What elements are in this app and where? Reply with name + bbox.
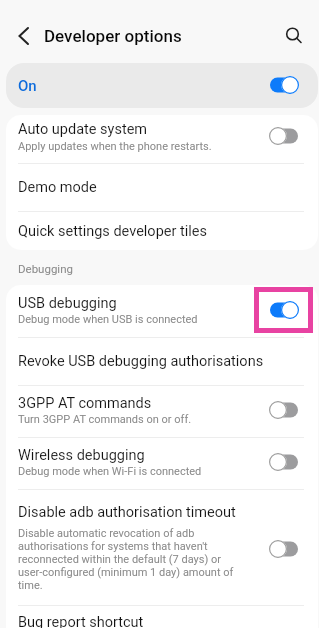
staticText: USB debugging bbox=[18, 295, 117, 312]
staticText: Revoke USB debugging authorisations bbox=[18, 353, 264, 370]
staticText: Turn 3GPP AT commands on or off. bbox=[18, 413, 192, 426]
button[interactable] bbox=[6, 605, 318, 628]
staticText: Bug report shortcut bbox=[18, 614, 144, 628]
button[interactable] bbox=[279, 21, 309, 51]
button[interactable] bbox=[6, 385, 318, 437]
staticText: Apply updates when the phone restarts. bbox=[18, 140, 212, 153]
button[interactable] bbox=[8, 22, 40, 50]
button[interactable] bbox=[6, 337, 318, 385]
button[interactable] bbox=[6, 115, 318, 163]
button[interactable] bbox=[6, 489, 318, 605]
button[interactable] bbox=[6, 163, 318, 211]
staticText: Quick settings developer tiles bbox=[18, 223, 207, 240]
staticText: 3GPP AT commands bbox=[18, 395, 152, 412]
staticText: Debug mode when Wi-Fi is connected bbox=[18, 465, 202, 478]
staticText: Wireless debugging bbox=[18, 447, 145, 464]
staticText: Debugging bbox=[18, 262, 73, 275]
staticText: Demo mode bbox=[18, 179, 97, 196]
staticText: Developer options bbox=[44, 26, 182, 46]
staticText: Disable adb authorisation timeout bbox=[18, 504, 236, 521]
button[interactable] bbox=[6, 63, 318, 108]
button[interactable] bbox=[6, 437, 318, 489]
staticText: Auto update system bbox=[18, 121, 148, 138]
button[interactable] bbox=[6, 285, 318, 337]
staticText: Debug mode when USB is connected bbox=[18, 313, 198, 326]
staticText: Disable automatic revocation of adb auth… bbox=[18, 527, 234, 592]
staticText: On bbox=[18, 77, 37, 95]
button[interactable] bbox=[6, 211, 318, 250]
